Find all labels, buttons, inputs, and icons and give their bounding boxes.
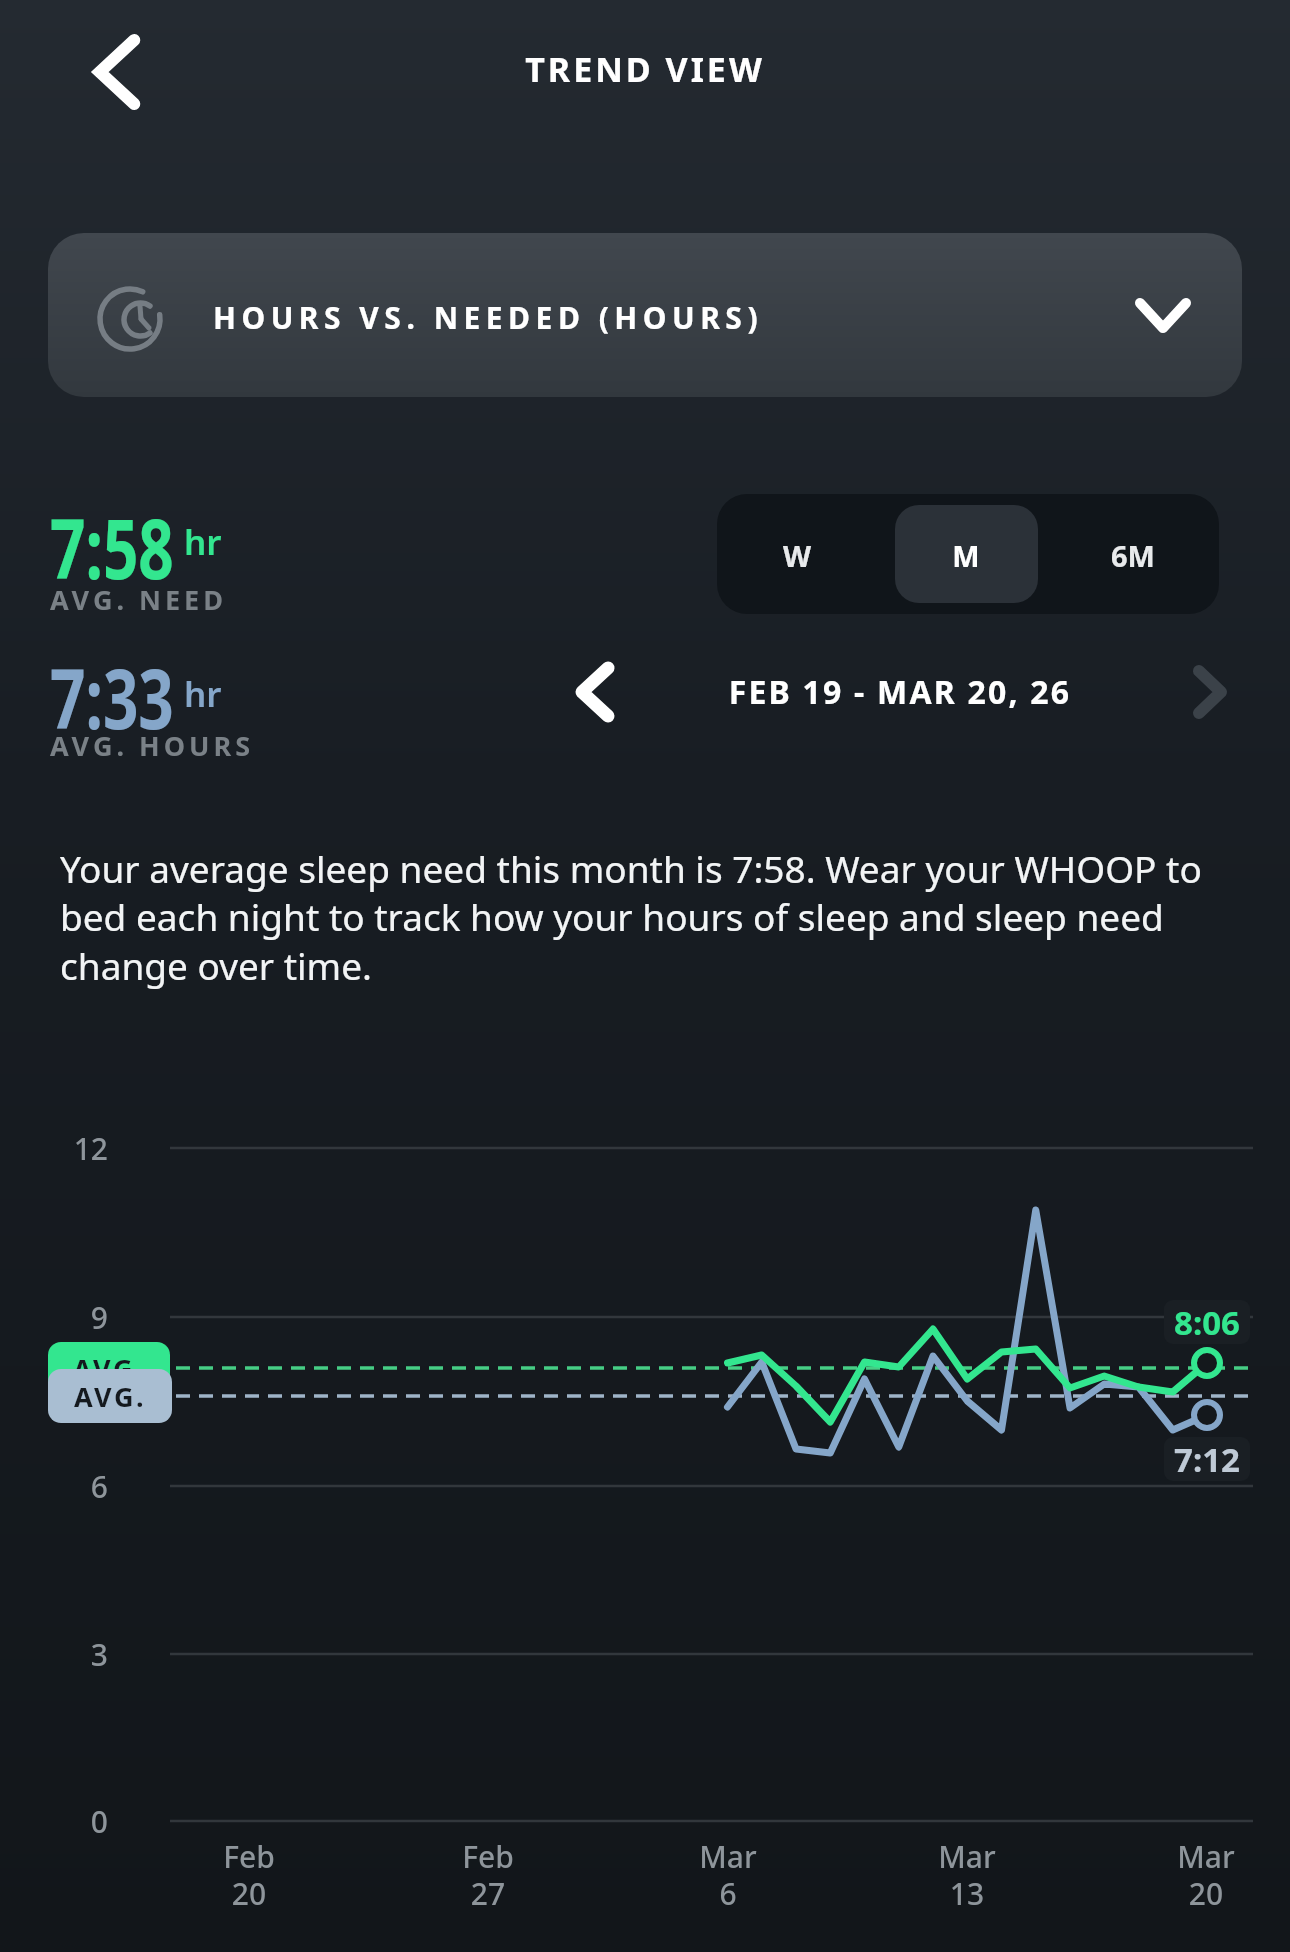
staticText: FEB 19 - MAR 20, 26 — [650, 670, 1150, 714]
staticText: Mar 20 — [1146, 1836, 1266, 1914]
staticText: 8:06 — [1174, 1300, 1240, 1344]
staticText: HOURS VS. NEEDED (HOURS) — [213, 297, 1013, 338]
staticText: Mar 6 — [668, 1836, 788, 1914]
button[interactable]: HOURS VS. NEEDED (HOURS) — [48, 233, 1242, 397]
staticText: 9 — [40, 1297, 108, 1338]
staticText: AVG. — [74, 1378, 147, 1415]
button[interactable]: 6M — [1093, 536, 1173, 575]
staticText: Feb 20 — [189, 1836, 309, 1914]
staticText: 7:33 — [50, 642, 350, 752]
button[interactable] — [895, 505, 1038, 603]
staticText: 3 — [40, 1634, 108, 1675]
staticText: AVG. — [73, 1350, 146, 1387]
staticText: AVG. HOURS — [50, 727, 450, 764]
staticText: TREND VIEW — [0, 46, 1290, 92]
staticText: hr — [184, 670, 284, 718]
staticText: Mar 13 — [907, 1836, 1027, 1914]
button[interactable] — [1175, 648, 1245, 736]
button[interactable] — [560, 648, 630, 736]
staticText: Feb 27 — [428, 1836, 548, 1914]
staticText: 12 — [40, 1128, 108, 1169]
button[interactable] — [72, 24, 162, 120]
staticText: hr — [184, 518, 284, 566]
staticText: 0 — [40, 1801, 108, 1842]
staticText: AVG. NEED — [50, 581, 450, 618]
staticText: 7:58 — [50, 492, 350, 602]
button[interactable]: W — [757, 536, 837, 575]
staticText: 7:12 — [1174, 1437, 1240, 1481]
button[interactable]: M — [926, 536, 1006, 575]
staticText: 6 — [40, 1466, 108, 1507]
staticText: Your average sleep need this month is 7:… — [60, 843, 1260, 991]
